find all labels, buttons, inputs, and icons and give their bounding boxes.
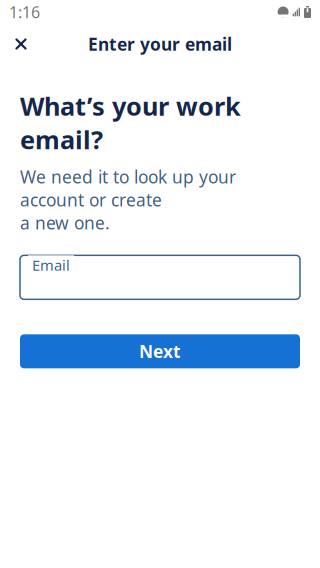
staticText: Next xyxy=(139,340,181,363)
button[interactable]: Close xyxy=(4,27,38,61)
button[interactable]: Next xyxy=(20,334,300,368)
staticText: Enter your email xyxy=(88,32,232,55)
staticText: 1:16 xyxy=(9,1,40,23)
staticText: We need it to look up your account or cr… xyxy=(20,165,236,234)
staticText: Email xyxy=(32,255,70,275)
staticText: What’s your work email? xyxy=(20,89,241,156)
